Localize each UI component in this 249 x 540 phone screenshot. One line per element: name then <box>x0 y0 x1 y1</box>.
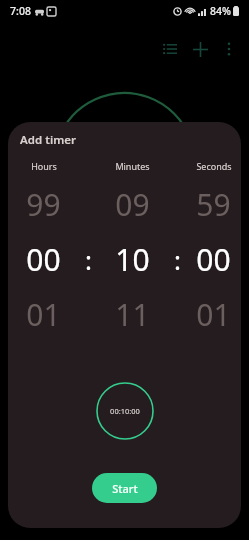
button[interactable]: 00 <box>8 239 79 280</box>
staticText: 84% <box>210 4 231 18</box>
button[interactable]: 59 <box>186 184 241 225</box>
staticText: Minutes <box>115 160 150 172</box>
staticText: Add timer <box>20 132 76 148</box>
staticText: 09 <box>115 184 150 225</box>
button[interactable]: Start <box>92 473 157 503</box>
staticText: 7:08 <box>10 4 31 18</box>
button[interactable]: 00 <box>186 239 241 280</box>
staticText: 00 <box>196 239 231 280</box>
staticText: 01 <box>26 294 61 335</box>
staticText: Start <box>112 481 138 496</box>
staticText: Seconds <box>196 160 232 172</box>
button[interactable]: 11 <box>97 294 168 335</box>
staticText: : <box>174 242 181 277</box>
staticText: Hours <box>31 160 57 172</box>
staticText: 59 <box>196 184 231 225</box>
button[interactable]: 09 <box>97 184 168 225</box>
button[interactable]: 01 <box>186 294 241 335</box>
staticText: 00 <box>26 239 61 280</box>
staticText: 10 <box>115 239 150 280</box>
button[interactable]: 10 <box>97 239 168 280</box>
staticText: 00:10:00 <box>110 406 140 416</box>
button[interactable]: More options <box>215 35 243 63</box>
staticText: 11 <box>115 294 150 335</box>
staticText: 99 <box>26 184 61 225</box>
button[interactable]: Add timer <box>185 34 215 64</box>
button[interactable]: Timer list <box>155 34 185 64</box>
button[interactable]: 01 <box>8 294 79 335</box>
staticText: 01 <box>196 294 231 335</box>
staticText: : <box>85 242 92 277</box>
button[interactable]: 00:10:00 <box>96 382 154 440</box>
button[interactable]: 99 <box>8 184 79 225</box>
